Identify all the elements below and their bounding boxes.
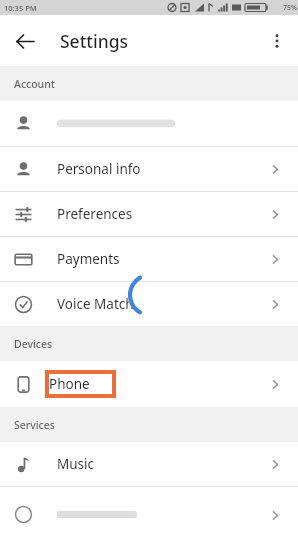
button[interactable] (0, 487, 298, 527)
staticText: Voice Match (57, 295, 134, 313)
staticText: 10:35 PM (4, 3, 37, 13)
staticText: Services (14, 418, 55, 432)
button[interactable]: Account email (0, 101, 298, 146)
staticText: Phone (49, 375, 112, 393)
button[interactable]: Phone (0, 361, 298, 407)
staticText: Account (14, 77, 55, 91)
staticText: Personal info (57, 160, 141, 178)
staticText: Preferences (57, 205, 133, 223)
staticText: 75% (283, 3, 297, 13)
button[interactable]: Preferences (0, 192, 298, 236)
button[interactable]: More options (261, 25, 293, 57)
button[interactable]: Back (8, 24, 42, 58)
staticText: Settings (60, 29, 129, 53)
staticText: Devices (14, 337, 53, 351)
button[interactable]: Personal info (0, 147, 298, 191)
button[interactable]: Payments (0, 237, 298, 281)
button[interactable]: Voice Match (0, 282, 298, 326)
staticText: Music (57, 455, 95, 473)
button[interactable]: Music (0, 442, 298, 486)
staticText: Payments (57, 250, 120, 268)
